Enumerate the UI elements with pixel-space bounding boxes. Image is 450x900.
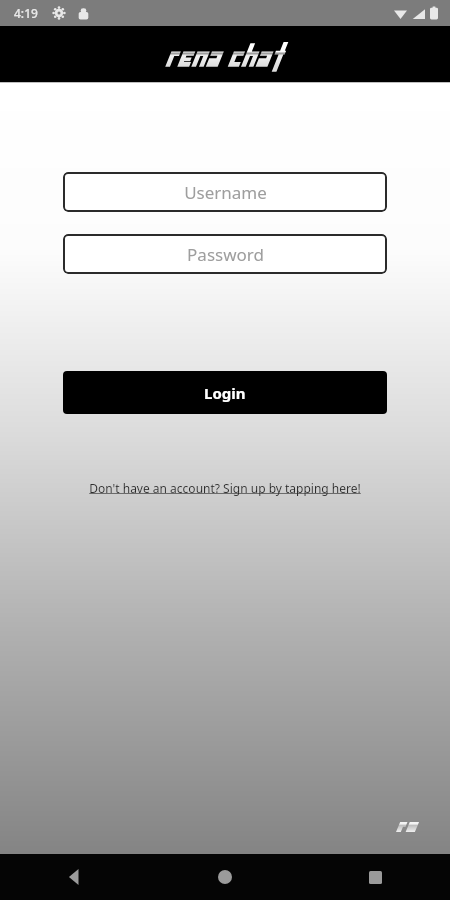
- staticText: Username: [184, 181, 267, 204]
- staticText: Don't have an account? Sign up by tappin…: [89, 480, 361, 496]
- button[interactable]: Don't have an account? Sign up by tappin…: [81, 476, 369, 500]
- button[interactable]: Username: [63, 172, 387, 212]
- button[interactable]: Back: [51, 854, 99, 900]
- staticText: Password: [187, 243, 264, 266]
- button[interactable]: Recents: [351, 854, 399, 900]
- staticText: Login: [204, 383, 246, 403]
- button[interactable]: Password: [63, 234, 387, 274]
- button[interactable]: Login: [63, 371, 387, 414]
- button[interactable]: Home: [201, 854, 249, 900]
- staticText: 4:19: [14, 5, 38, 21]
